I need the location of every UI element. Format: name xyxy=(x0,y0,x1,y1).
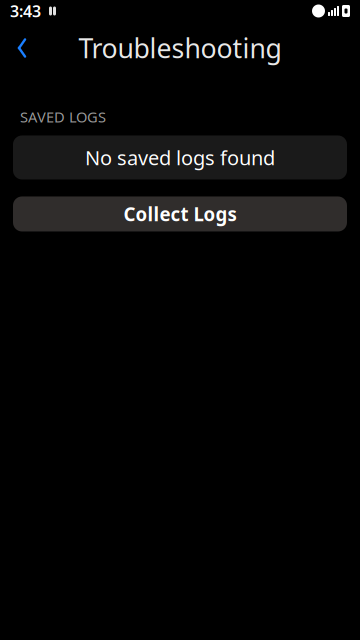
staticText: Troubleshooting xyxy=(78,30,281,66)
staticText: Collect Logs xyxy=(123,202,236,226)
button[interactable]: Back xyxy=(0,26,44,70)
staticText: No saved logs found xyxy=(85,144,275,171)
button[interactable]: Collect Logs xyxy=(13,196,347,231)
staticText: 3:43 xyxy=(10,0,41,22)
staticText: SAVED LOGS xyxy=(20,107,106,126)
